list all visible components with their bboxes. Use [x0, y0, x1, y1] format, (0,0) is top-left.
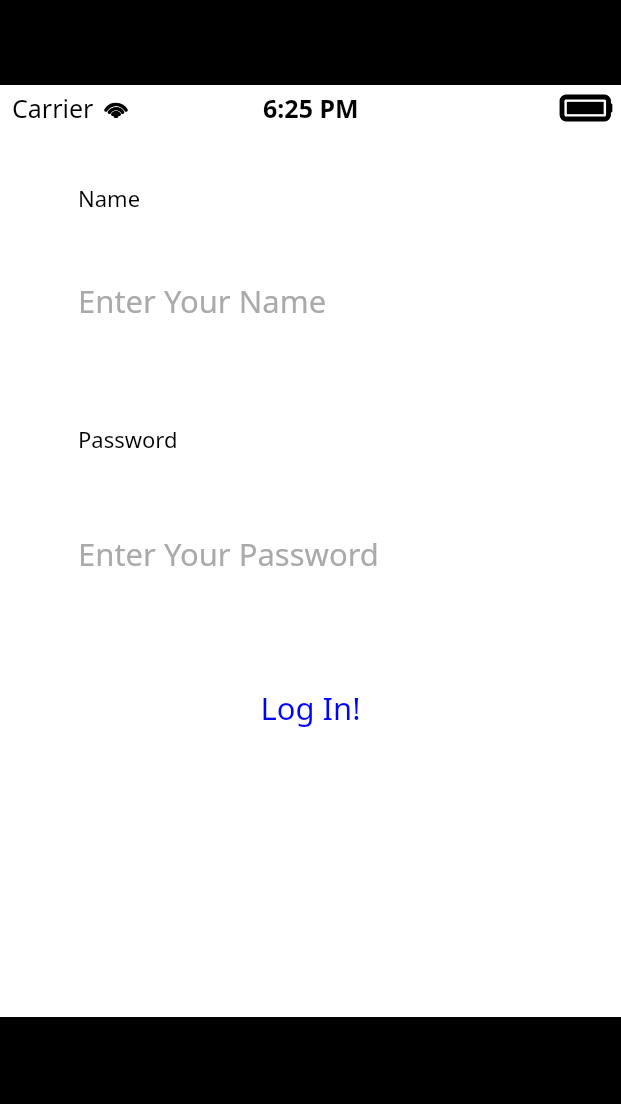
staticText: Log In!	[0, 687, 621, 729]
staticText: Enter Your Name	[78, 280, 327, 320]
staticText: Password	[78, 424, 178, 454]
button[interactable]: Enter Your Name	[0, 280, 621, 320]
staticText: 6:25 PM	[263, 91, 359, 125]
staticText: Enter Your Password	[78, 533, 379, 573]
button[interactable]: Log In!	[0, 687, 621, 729]
staticText: Carrier	[12, 91, 94, 125]
button[interactable]: Enter Your Password	[0, 533, 621, 573]
staticText: Name	[78, 183, 141, 213]
